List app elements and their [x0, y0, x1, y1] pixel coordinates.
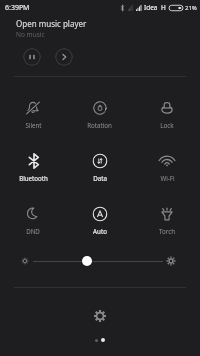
staticText: Wi-Fi [160, 174, 175, 182]
button[interactable]: Settings [92, 308, 108, 324]
button[interactable]: Rotation [66, 88, 133, 141]
button[interactable]: Silent [0, 88, 66, 141]
staticText: Data [93, 174, 107, 182]
staticText: H [161, 3, 166, 12]
button[interactable]: Open music player [16, 18, 87, 29]
staticText: Auto [93, 227, 107, 235]
staticText: 21% [185, 4, 197, 12]
staticText: Idea [144, 3, 158, 12]
button[interactable]: Pause [23, 48, 41, 66]
button[interactable]: Torch [133, 194, 200, 247]
staticText: Bluetooth [19, 174, 48, 182]
staticText: 6:39PM [5, 3, 30, 13]
button[interactable]: Wi-Fi [133, 141, 200, 194]
button[interactable]: Lock [133, 88, 200, 141]
button[interactable] [33, 261, 163, 262]
staticText: No music [16, 30, 45, 39]
staticText: Rotation [87, 121, 112, 129]
button[interactable]: Bluetooth [0, 141, 66, 194]
button[interactable]: Next [55, 48, 73, 66]
staticText: DND [26, 227, 40, 235]
button[interactable]: Auto [66, 194, 133, 247]
staticText: Lock [160, 121, 174, 129]
button[interactable]: Data [66, 141, 133, 194]
staticText: Silent [25, 121, 42, 129]
button[interactable]: DND [0, 194, 66, 247]
staticText: Torch [159, 227, 175, 235]
